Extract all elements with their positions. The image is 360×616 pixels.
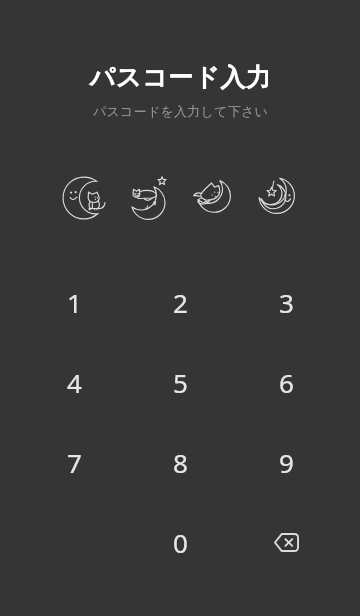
button[interactable]: 9: [233, 422, 339, 502]
button[interactable]: 6: [233, 342, 339, 422]
staticText: 4: [67, 365, 82, 400]
button[interactable]: 1: [21, 262, 127, 342]
staticText: 8: [173, 445, 188, 480]
staticText: 0: [173, 525, 188, 560]
staticText: 7: [67, 445, 82, 480]
button[interactable]: Backspace: [233, 502, 339, 582]
staticText: 9: [279, 445, 294, 480]
button[interactable]: 4: [21, 342, 127, 422]
staticText: 6: [279, 365, 294, 400]
button[interactable]: 2: [127, 262, 233, 342]
staticText: 3: [279, 285, 294, 320]
button[interactable]: 7: [21, 422, 127, 502]
staticText: パスコードを入力して下さい: [93, 103, 268, 119]
button[interactable]: 0: [127, 502, 233, 582]
staticText: 2: [173, 285, 188, 320]
staticText: 1: [67, 285, 82, 320]
button[interactable]: 3: [233, 262, 339, 342]
staticText: パスコード入力: [89, 62, 272, 93]
button[interactable]: 5: [127, 342, 233, 422]
staticText: 5: [173, 365, 188, 400]
button[interactable]: 8: [127, 422, 233, 502]
